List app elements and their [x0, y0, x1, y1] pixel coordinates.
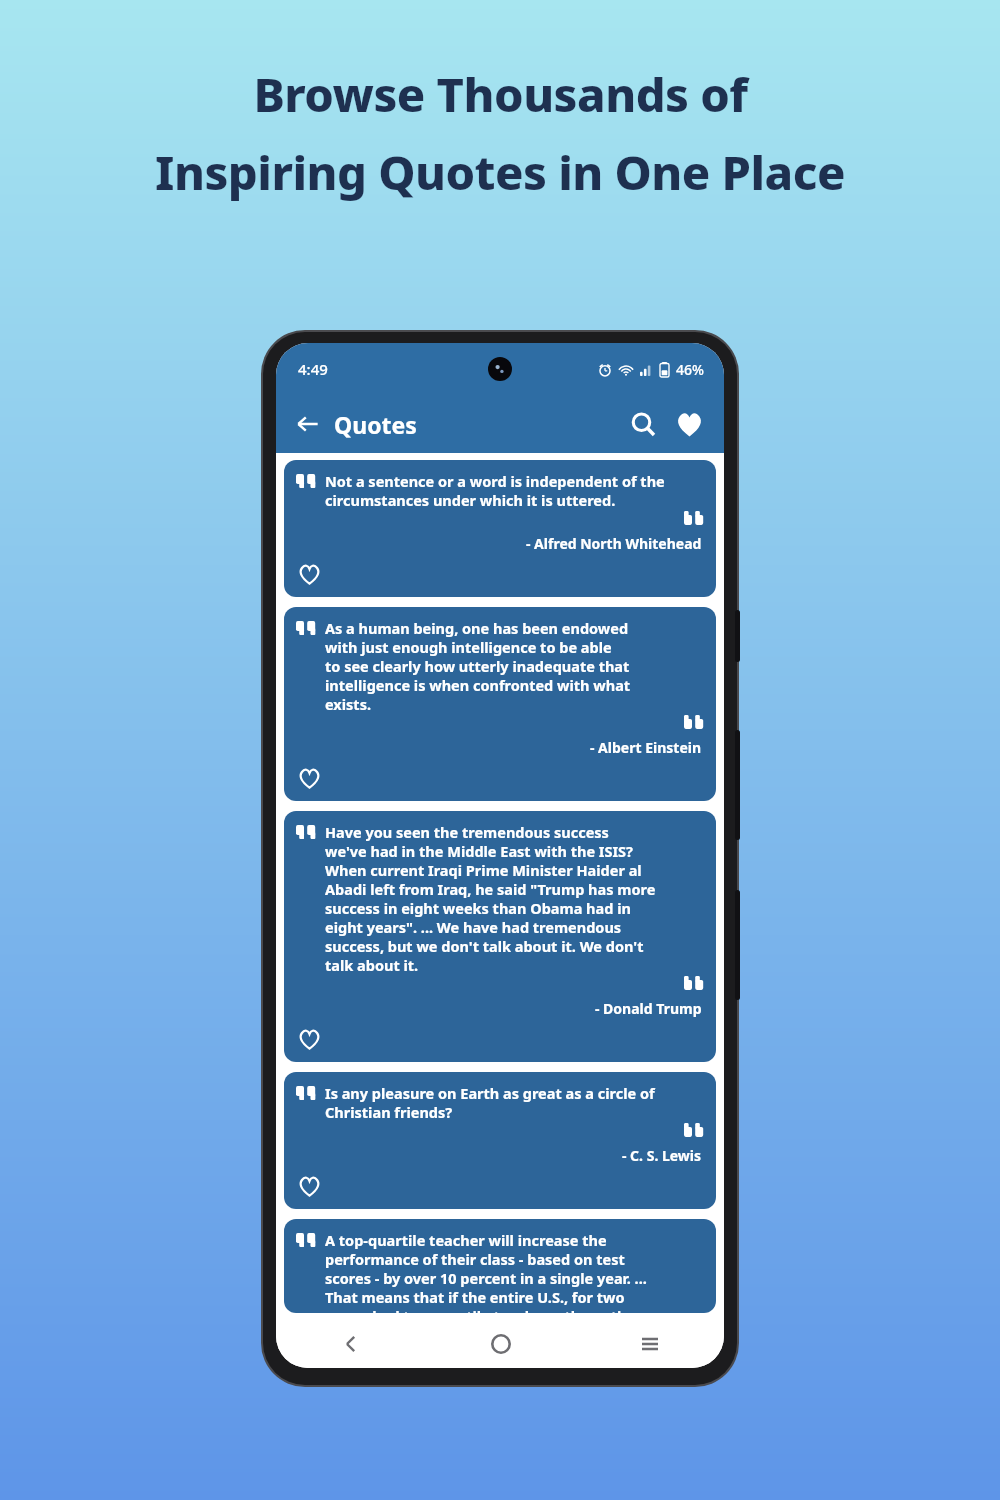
button[interactable]: Not a sentence or a word is independent … [284, 460, 716, 597]
staticText: A top-quartile teacher will increase the… [325, 1230, 647, 1313]
button[interactable]: As a human being, one has been endowed w… [284, 607, 716, 801]
button[interactable]: Search [620, 401, 666, 447]
staticText: 46% [676, 360, 704, 379]
staticText: 4:49 [298, 359, 328, 379]
staticText: As a human being, one has been endowed w… [325, 618, 631, 714]
staticText: - Albert Einstein [590, 738, 702, 757]
staticText: Inspiring Quotes in One Place [155, 140, 845, 204]
staticText: Is any pleasure on Earth as great as a c… [325, 1083, 655, 1122]
staticText: - Donald Trump [595, 999, 702, 1018]
button[interactable]: Back [288, 404, 328, 444]
button[interactable]: Recents [575, 1320, 724, 1368]
button[interactable]: Favorite [294, 763, 324, 793]
staticText: - C. S. Lewis [622, 1146, 702, 1165]
button[interactable]: Favorite [294, 1024, 324, 1054]
button[interactable]: Home [426, 1320, 575, 1368]
button[interactable]: Back [276, 1320, 426, 1368]
staticText: Quotes [334, 409, 417, 440]
staticText: Have you seen the tremendous success we'… [325, 822, 656, 975]
button[interactable]: Have you seen the tremendous success we'… [284, 811, 716, 1062]
button[interactable]: Favorite [294, 559, 324, 589]
button[interactable]: Favorite [294, 1171, 324, 1201]
button[interactable]: A top-quartile teacher will increase the… [284, 1219, 716, 1313]
button[interactable]: Favorites [666, 401, 712, 447]
staticText: Browse Thousands of [253, 62, 748, 126]
staticText: - Alfred North Whitehead [526, 534, 702, 553]
button[interactable]: Is any pleasure on Earth as great as a c… [284, 1072, 716, 1209]
staticText: Not a sentence or a word is independent … [325, 471, 665, 510]
